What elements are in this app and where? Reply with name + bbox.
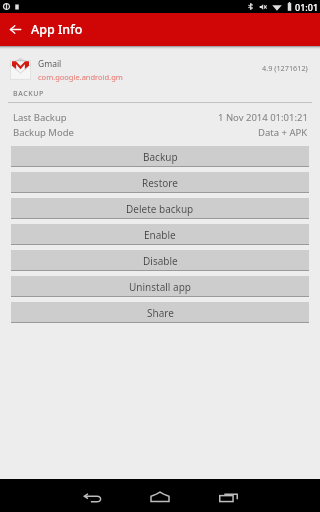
button[interactable]: Backup bbox=[11, 146, 309, 167]
button[interactable]: Backup Mode bbox=[0, 125, 320, 140]
staticText: Backup Mode bbox=[13, 126, 74, 139]
button[interactable]: Navigate up bbox=[0, 13, 31, 46]
button[interactable]: Share bbox=[11, 302, 309, 323]
staticText: Enable bbox=[144, 228, 176, 242]
staticText: com.google.android.gm bbox=[38, 72, 123, 82]
staticText: 01:01 bbox=[295, 1, 319, 13]
button[interactable]: Home bbox=[140, 480, 180, 512]
button[interactable]: Recent apps bbox=[208, 480, 249, 512]
staticText: Restore bbox=[142, 176, 178, 190]
staticText: Delete backup bbox=[126, 202, 194, 216]
staticText: Gmail bbox=[38, 58, 62, 70]
button[interactable]: Back bbox=[72, 480, 113, 512]
staticText: Share bbox=[147, 306, 174, 320]
button[interactable]: Disable bbox=[11, 250, 309, 271]
staticText: Data + APK bbox=[258, 126, 308, 139]
button[interactable]: Delete backup bbox=[11, 198, 309, 219]
staticText: Disable bbox=[143, 254, 178, 268]
staticText: Uninstall app bbox=[129, 280, 191, 294]
button[interactable]: Last Backup bbox=[0, 110, 320, 125]
staticText: Backup bbox=[143, 150, 178, 164]
button[interactable]: Enable bbox=[11, 224, 309, 245]
staticText: 1 Nov 2014 01:01:21 bbox=[218, 111, 308, 124]
button[interactable]: Uninstall app bbox=[11, 276, 309, 297]
button[interactable]: Restore bbox=[11, 172, 309, 193]
staticText: App Info bbox=[31, 21, 83, 38]
staticText: BACKUP bbox=[13, 89, 44, 99]
staticText: 4.9 (1271612) bbox=[262, 63, 308, 73]
staticText: Last Backup bbox=[13, 111, 67, 124]
